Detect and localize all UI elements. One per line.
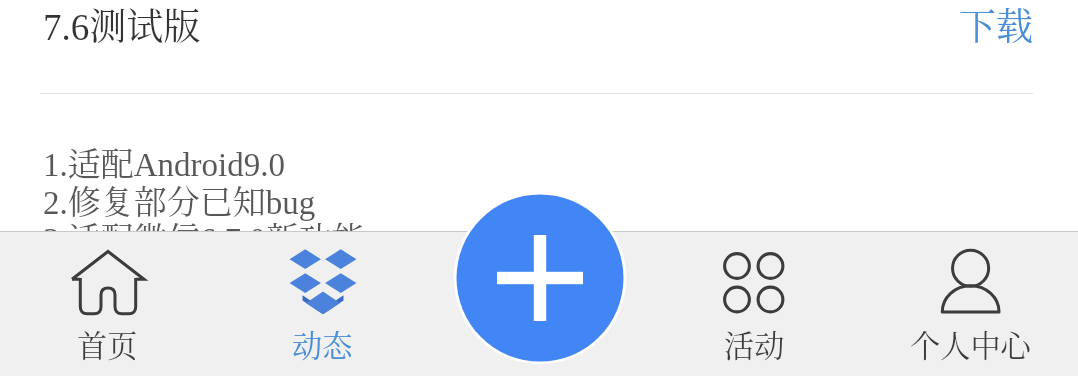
button[interactable]: Add	[452, 190, 628, 366]
staticText: 动态	[292, 322, 353, 365]
button[interactable]: 活动	[646, 231, 862, 376]
staticText: 活动	[724, 322, 785, 365]
staticText: 7.6测试版	[43, 0, 201, 50]
staticText: 个人中心	[910, 322, 1031, 365]
button[interactable]: 下载	[950, 0, 1033, 50]
staticText: 首页	[77, 322, 138, 365]
button[interactable]: 动态	[215, 231, 430, 376]
staticText: 下载	[950, 0, 1033, 50]
button[interactable]: 个人中心	[862, 231, 1078, 376]
staticText: 1.适配Android9.0 2.修复部分已知bug 3.适配微信6.7.0新功…	[43, 138, 365, 260]
button[interactable]: 首页	[0, 231, 215, 376]
